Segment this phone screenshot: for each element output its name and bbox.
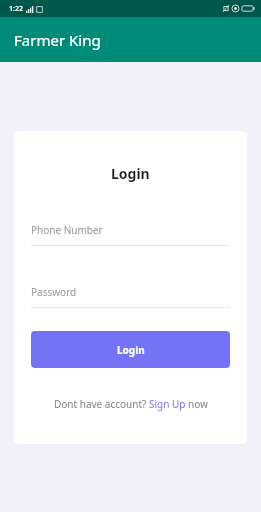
button[interactable]: Password <box>31 285 230 308</box>
staticText: Password <box>31 285 77 299</box>
staticText: Phone Number <box>31 223 103 237</box>
staticText: Dont have account? Sign Up now <box>54 397 208 411</box>
staticText: Login <box>111 164 150 183</box>
button[interactable]: Dont have account? Sign Up now <box>52 395 210 413</box>
button[interactable]: Phone Number <box>31 223 230 246</box>
staticText: Farmer King <box>14 30 101 50</box>
staticText: 1:22 <box>9 4 23 14</box>
button[interactable]: Login <box>31 331 230 368</box>
staticText: Login <box>117 343 145 357</box>
